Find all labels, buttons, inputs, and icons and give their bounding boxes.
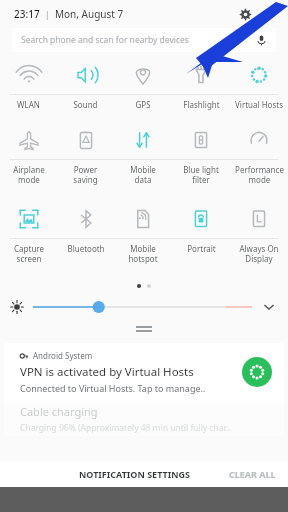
staticText: Mon, August 7 [55,7,124,21]
button[interactable]: Blue light filter [172,121,230,159]
button[interactable]: Capture screen [0,200,57,238]
button[interactable]: Bluetooth [57,200,114,238]
staticText: Blue light filter [183,164,219,185]
button[interactable]: Search phone and scan for nearby devices [12,28,276,52]
button[interactable]: Settings [232,1,258,27]
staticText: Search phone and scan for nearby devices [21,34,189,46]
button[interactable]: Android System [4,343,284,402]
staticText: Airplane mode [13,164,45,185]
other: Brightness [10,300,24,314]
staticText: WLAN [17,99,40,110]
button[interactable]: Virtual Hosts [230,56,288,94]
button[interactable]: Expand [260,298,278,316]
staticText: Flashlight [183,99,220,110]
button[interactable]: WLAN [0,56,57,94]
button[interactable]: GPS [114,56,172,94]
button[interactable]: More options [258,3,280,25]
button[interactable]: Power saving [57,121,114,159]
button[interactable]: Sound [57,56,114,94]
button[interactable]: Brightness slider [33,298,252,316]
staticText: NOTIFICATION SETTINGS [79,468,191,480]
staticText: Mobile hotspot [128,243,158,264]
staticText: VPN is activated by Virtual Hosts [20,364,194,380]
button[interactable]: Airplane mode [0,121,57,159]
staticText: 23:17 [14,7,40,21]
button[interactable]: Portrait [172,200,230,238]
staticText: | [40,8,55,20]
staticText: Bluetooth [67,243,105,254]
staticText: Cable charging [20,404,98,419]
staticText: Power saving [73,164,98,185]
button[interactable]: Flashlight [172,56,230,94]
staticText: Capture screen [14,243,44,264]
button[interactable]: NOTIFICATION SETTINGS [71,464,199,484]
staticText: CLEAR ALL [229,468,276,480]
staticText: GPS [135,99,151,110]
staticText: Portrait [187,243,216,254]
button[interactable]: Performance mode [230,121,288,159]
button[interactable]: Mobile hotspot [114,200,172,238]
staticText: Virtual Hosts [235,99,283,110]
other: Voice search [256,35,267,46]
staticText: Sound [73,99,98,110]
staticText: Mobile data [130,164,156,185]
staticText: Performance mode [235,164,284,185]
staticText: Charging 96% (Approximately 48 min until… [20,422,231,434]
button[interactable]: Mobile data [114,121,172,159]
staticText: Connected to Virtual Hosts. Tap to manag… [20,382,206,394]
staticText: Always On Display [239,243,279,264]
button[interactable]: CLEAR ALL [221,464,284,484]
button[interactable]: Always On Display [230,200,288,238]
staticText: Android System [33,350,93,361]
